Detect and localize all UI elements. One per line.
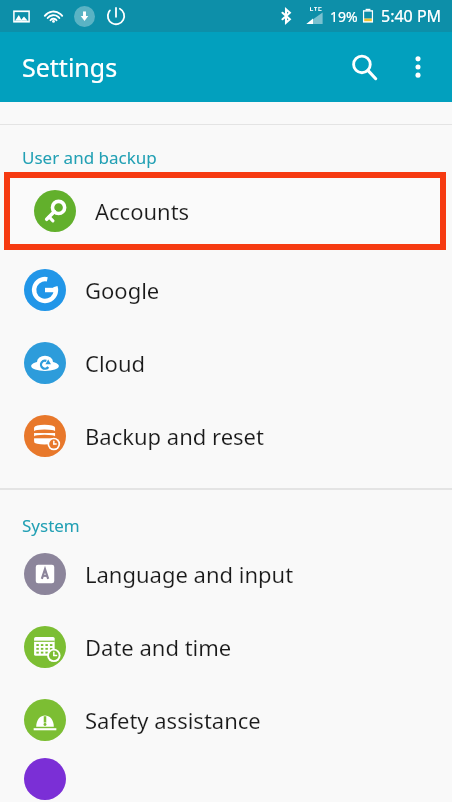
button[interactable]: Cloud xyxy=(0,326,452,399)
button[interactable]: Backup and reset xyxy=(0,399,452,472)
button[interactable]: Google xyxy=(0,253,452,326)
button[interactable]: More options xyxy=(392,41,444,93)
button[interactable]: Language and input xyxy=(0,537,452,610)
staticText: Settings xyxy=(22,50,118,84)
staticText: Language and input xyxy=(85,559,294,589)
staticText: System xyxy=(22,514,80,537)
staticText: Cloud xyxy=(85,348,146,378)
staticText: Google xyxy=(85,275,160,305)
button[interactable]: Search xyxy=(336,39,392,95)
staticText: Backup and reset xyxy=(85,421,264,451)
button[interactable]: Date and time xyxy=(0,610,452,683)
staticText: User and backup xyxy=(22,146,157,169)
staticText: Accounts xyxy=(95,196,190,226)
staticText: Safety assistance xyxy=(85,705,261,735)
staticText: Date and time xyxy=(85,632,232,662)
staticText: 19% xyxy=(330,7,358,26)
button[interactable]: Accounts xyxy=(10,178,440,244)
button[interactable]: Safety assistance xyxy=(0,683,452,756)
staticText: 5:40 PM xyxy=(381,5,442,27)
button[interactable] xyxy=(0,756,452,802)
